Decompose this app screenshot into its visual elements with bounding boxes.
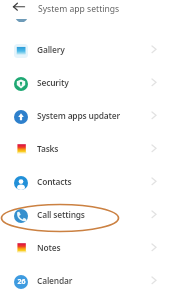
staticText: Gallery [37, 44, 65, 55]
staticText: Call settings [37, 209, 85, 220]
staticText: Calendar [37, 275, 73, 286]
staticText: Security [37, 77, 69, 88]
button[interactable]: System apps updater [0, 99, 170, 132]
staticText: System apps updater [37, 110, 120, 121]
button[interactable]: Call settings [0, 198, 170, 231]
staticText: System app settings [38, 3, 120, 15]
button[interactable]: Gallery [0, 33, 170, 66]
button[interactable]: 26 [0, 264, 170, 297]
staticText: 26 [17, 277, 26, 287]
button[interactable]: Back [8, 0, 29, 14]
button[interactable]: Tasks [0, 132, 170, 165]
staticText: Tasks [37, 143, 59, 154]
button[interactable]: Notes [0, 231, 170, 264]
staticText: Notes [37, 242, 61, 253]
button[interactable]: Security [0, 66, 170, 99]
button[interactable]: Contacts [0, 165, 170, 198]
staticText: Contacts [37, 176, 72, 187]
